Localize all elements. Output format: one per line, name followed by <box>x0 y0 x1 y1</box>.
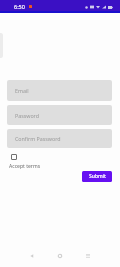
button[interactable]: Back <box>25 252 39 259</box>
button[interactable]: Recent apps <box>81 252 95 259</box>
staticText: Confirm Password <box>15 135 61 142</box>
button[interactable]: Accept terms checkbox <box>11 154 17 160</box>
staticText: Password <box>15 112 39 119</box>
button[interactable]: Home <box>53 252 67 259</box>
button[interactable]: Confirm Password <box>7 129 112 148</box>
staticText: Email <box>15 87 29 94</box>
staticText: Submit <box>89 173 106 180</box>
button[interactable]: Submit <box>82 171 112 182</box>
button[interactable]: Password <box>7 105 112 125</box>
staticText: 6:50 <box>14 3 25 10</box>
button[interactable]: Email <box>7 80 112 101</box>
staticText: Accept terms <box>9 163 41 170</box>
